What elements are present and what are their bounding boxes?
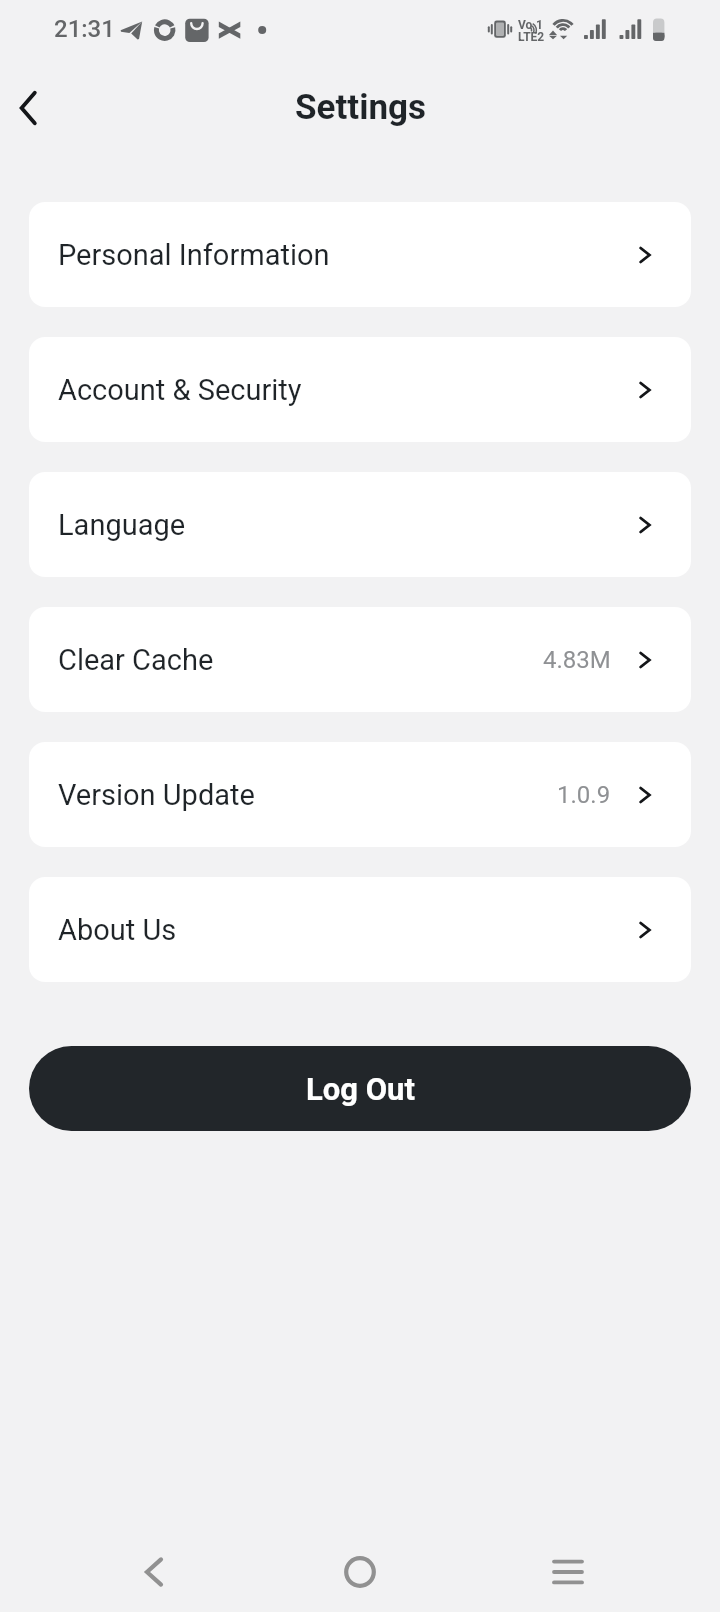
button[interactable]: Personal Information bbox=[29, 202, 691, 307]
staticText: Account & Security bbox=[58, 373, 302, 407]
button[interactable]: Language bbox=[29, 472, 691, 577]
button[interactable]: Log Out bbox=[29, 1046, 691, 1131]
staticText: Version Update bbox=[58, 778, 255, 812]
staticText: 1 bbox=[536, 18, 543, 32]
staticText: Clear Cache bbox=[58, 643, 214, 677]
button[interactable]: Back bbox=[116, 1536, 188, 1608]
staticText: Settings bbox=[295, 87, 426, 128]
staticText: Vo bbox=[518, 18, 533, 32]
button[interactable]: Back bbox=[0, 73, 56, 143]
button[interactable]: Account & Security bbox=[29, 337, 691, 442]
staticText: Personal Information bbox=[58, 238, 330, 272]
staticText: 21:31 bbox=[54, 15, 115, 43]
button[interactable]: Recent apps bbox=[532, 1536, 604, 1608]
button[interactable]: Version Update bbox=[29, 742, 691, 847]
staticText: 1.0.9 bbox=[557, 781, 611, 809]
staticText: Language bbox=[58, 508, 186, 542]
staticText: LTE2 bbox=[518, 30, 545, 44]
button[interactable]: Clear Cache bbox=[29, 607, 691, 712]
staticText: 4.83M bbox=[543, 646, 611, 674]
staticText: Log Out bbox=[306, 1071, 415, 1107]
staticText: About Us bbox=[58, 913, 177, 947]
button[interactable]: About Us bbox=[29, 877, 691, 982]
button[interactable]: Home bbox=[324, 1536, 396, 1608]
